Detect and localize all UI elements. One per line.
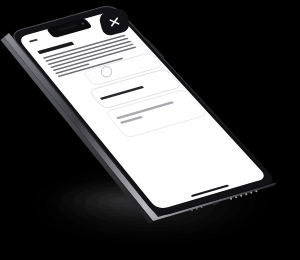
button[interactable]: Luk	[0, 0, 300, 260]
